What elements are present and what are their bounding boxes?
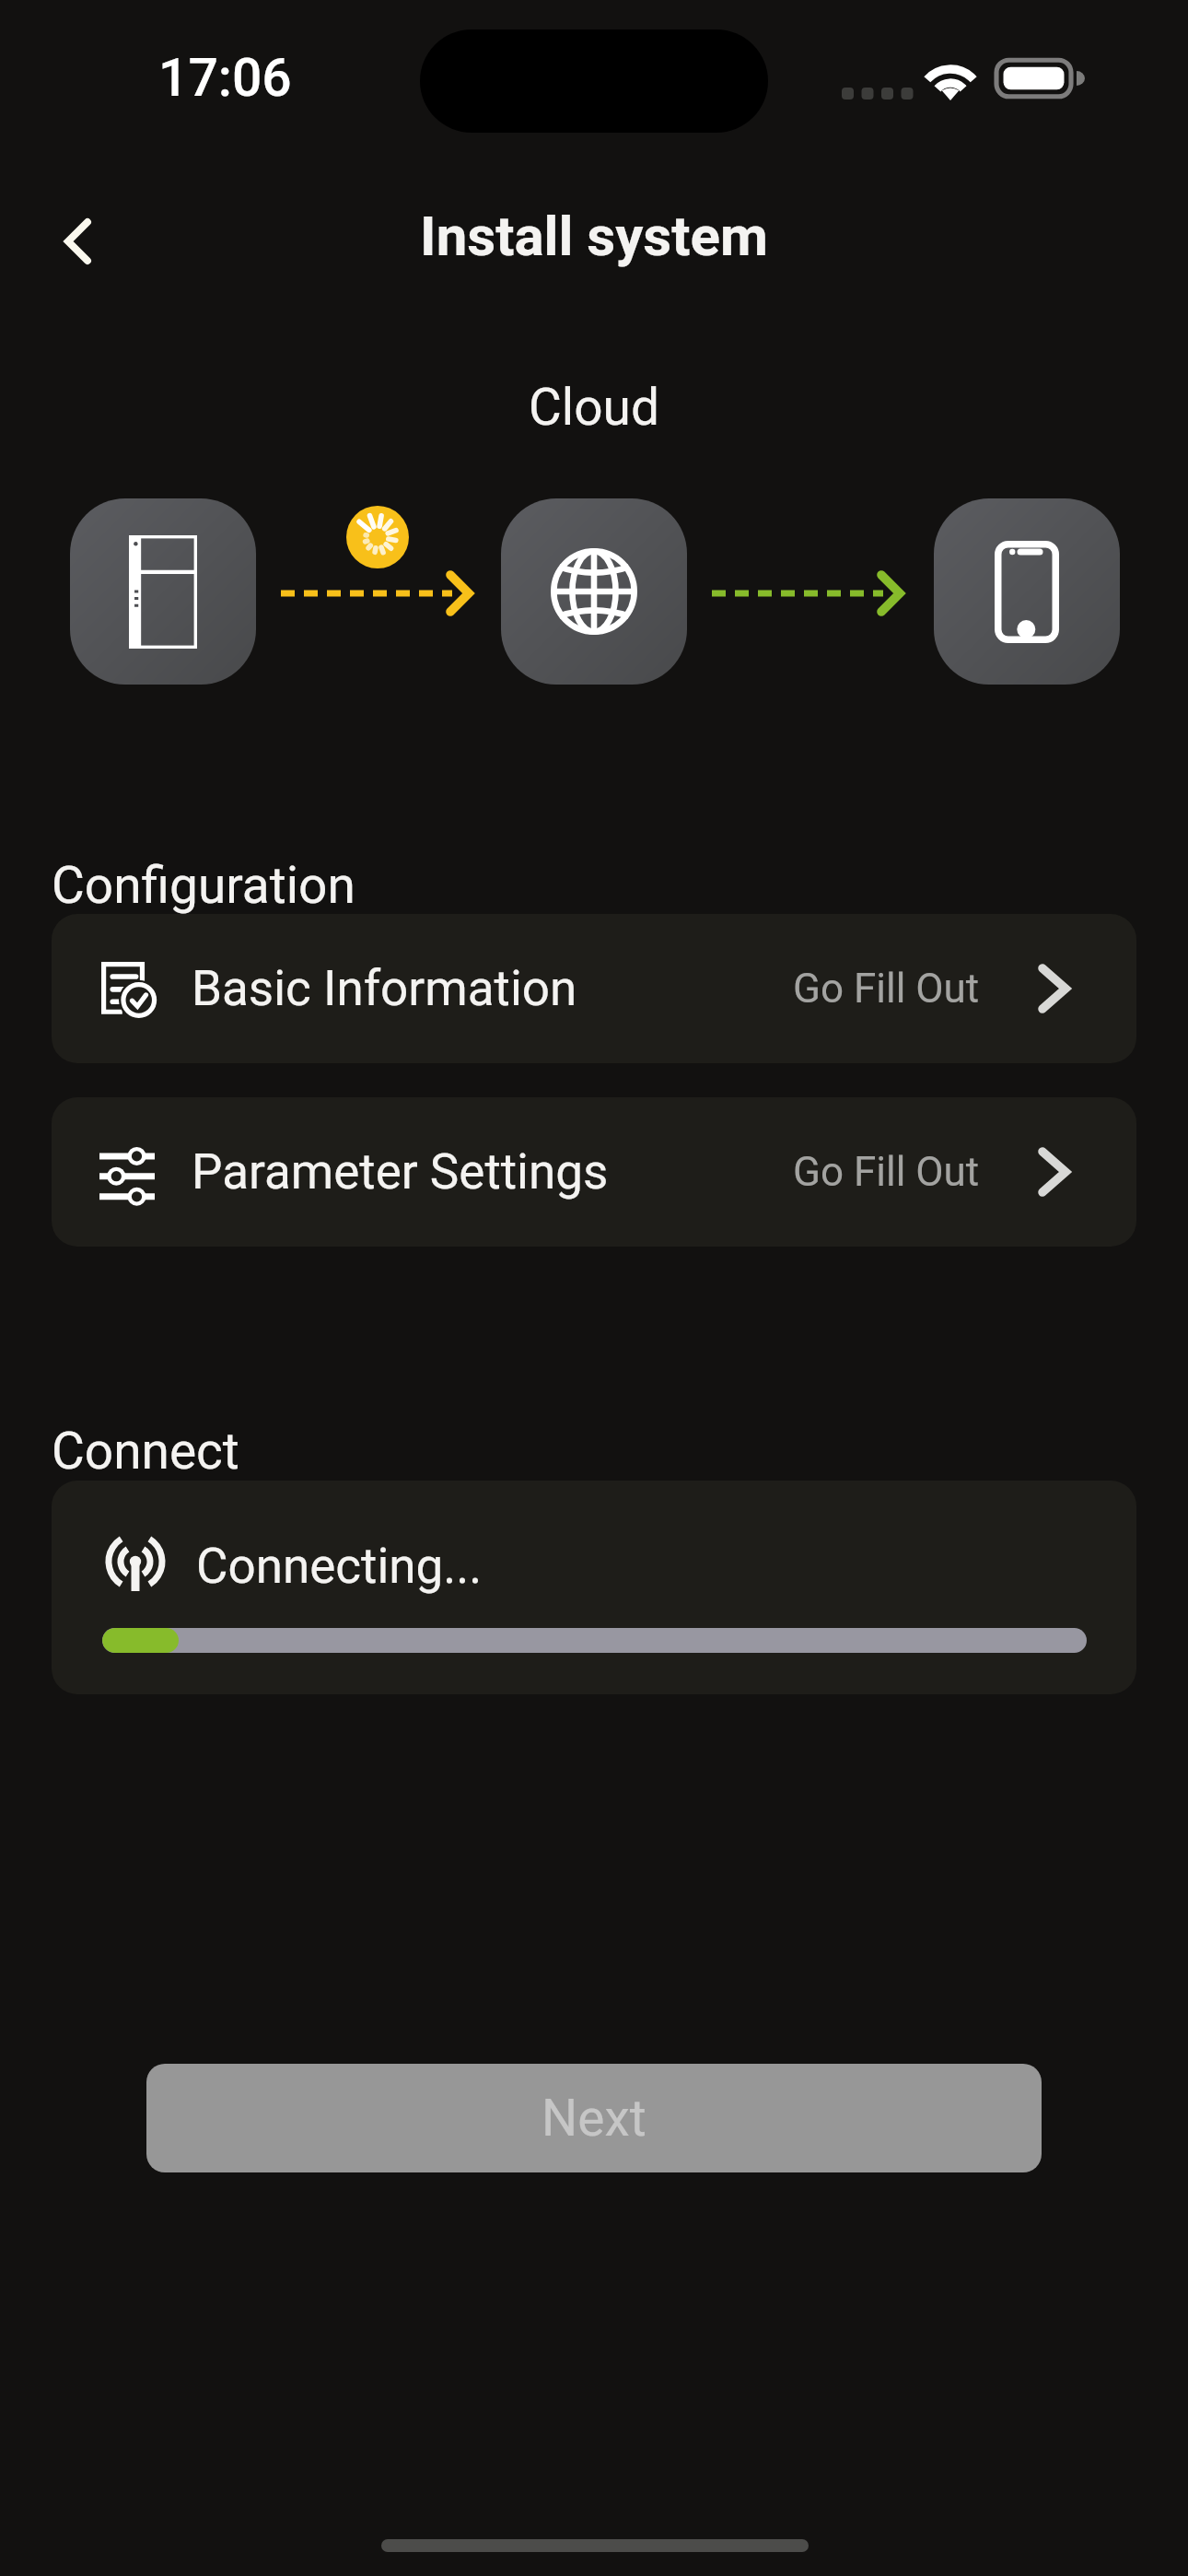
staticText: Basic Information (192, 960, 577, 1017)
staticText: Connecting... (196, 1538, 483, 1595)
staticText: Configuration (52, 856, 355, 915)
staticText: Cloud (0, 378, 1188, 437)
staticText: Install system (0, 204, 1188, 268)
staticText: 17:06 (158, 47, 292, 109)
staticText: Next (542, 2089, 646, 2148)
staticText: Go Fill Out (793, 1148, 980, 1196)
staticText: Connect (52, 1422, 239, 1481)
button[interactable]: Parameter Settings (52, 1097, 1136, 1247)
button[interactable]: Next (146, 2064, 1042, 2172)
staticText: Go Fill Out (793, 965, 980, 1013)
button[interactable]: Back (26, 188, 129, 295)
button[interactable]: Basic Information (52, 914, 1136, 1063)
staticText: Parameter Settings (192, 1143, 609, 1200)
button[interactable]: Connecting... (52, 1481, 1136, 1694)
